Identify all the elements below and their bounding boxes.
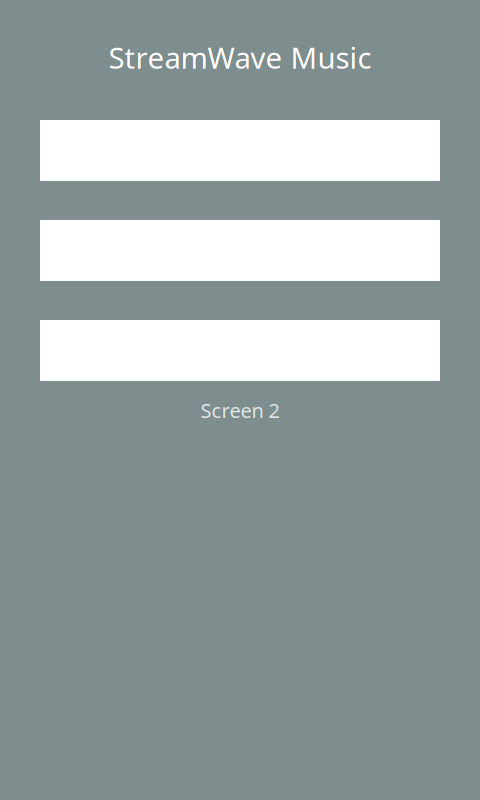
staticText: StreamWave Music	[108, 38, 371, 77]
staticText: Screen 2	[200, 397, 279, 424]
